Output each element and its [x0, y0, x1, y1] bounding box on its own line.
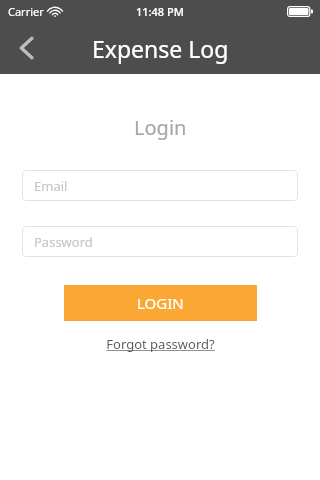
staticText: Login — [134, 114, 187, 141]
button[interactable]: Password — [22, 226, 298, 257]
staticText: LOGIN — [137, 293, 184, 313]
button[interactable]: Email — [22, 170, 298, 201]
button[interactable]: Forgot password? — [100, 333, 221, 355]
staticText: Password — [34, 233, 93, 251]
staticText: Forgot password? — [106, 335, 215, 353]
staticText: Carrier — [8, 4, 44, 19]
staticText: 11:48 PM — [136, 4, 184, 19]
staticText: Email — [34, 177, 68, 195]
button[interactable]: Back — [0, 22, 52, 74]
button[interactable]: LOGIN — [64, 285, 257, 321]
staticText: Expense Log — [92, 33, 229, 64]
